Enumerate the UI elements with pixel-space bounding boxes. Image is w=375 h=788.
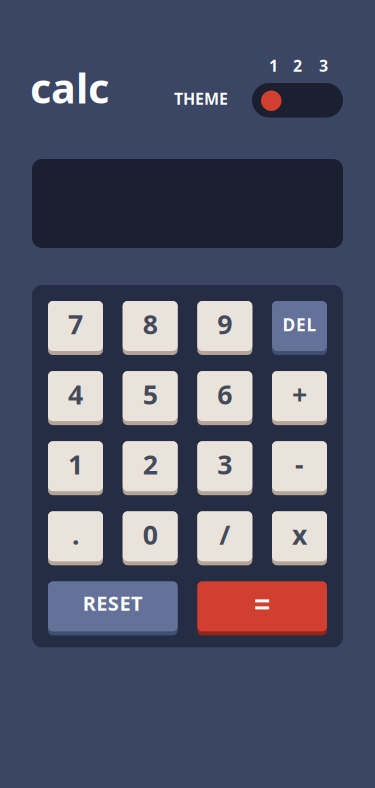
staticText: 5 xyxy=(143,376,158,412)
button[interactable]: 1 xyxy=(48,441,103,491)
staticText: 7 xyxy=(68,306,83,342)
button[interactable]: - xyxy=(272,441,327,491)
staticText: x xyxy=(292,517,307,552)
staticText: DEL xyxy=(282,313,317,336)
staticText: / xyxy=(219,517,230,552)
button[interactable]: + xyxy=(272,371,327,421)
staticText: THEME xyxy=(174,88,228,109)
staticText: + xyxy=(292,376,307,412)
staticText: 6 xyxy=(217,376,232,412)
button[interactable]: RESET xyxy=(48,581,178,631)
button[interactable]: Equals xyxy=(197,581,327,631)
staticText: 3 xyxy=(217,446,232,482)
staticText: . xyxy=(72,517,79,552)
button[interactable]: 4 xyxy=(48,371,103,421)
button[interactable]: 7 xyxy=(48,301,103,351)
button[interactable]: Theme xyxy=(252,83,343,117)
staticText: 1 xyxy=(269,55,278,76)
staticText: RESET xyxy=(83,590,143,616)
staticText: 2 xyxy=(143,446,158,482)
staticText: 2 xyxy=(293,55,302,76)
staticText: 9 xyxy=(217,306,232,342)
staticText: 0 xyxy=(143,517,158,552)
staticText: 3 xyxy=(319,55,328,76)
button[interactable]: 2 xyxy=(123,441,178,491)
button[interactable]: x xyxy=(272,511,327,561)
button[interactable]: 3 xyxy=(197,441,252,491)
staticText: 8 xyxy=(143,306,158,342)
button[interactable]: DEL xyxy=(272,301,327,351)
staticText: - xyxy=(295,446,304,482)
button[interactable]: 6 xyxy=(197,371,252,421)
button[interactable]: / xyxy=(197,511,252,561)
button[interactable]: 9 xyxy=(197,301,252,351)
staticText: 1 xyxy=(68,446,83,482)
button[interactable]: 0 xyxy=(123,511,178,561)
button[interactable]: . xyxy=(48,511,103,561)
staticText: calc xyxy=(30,60,109,115)
staticText: 4 xyxy=(68,376,83,412)
button[interactable]: 5 xyxy=(123,371,178,421)
button[interactable]: 8 xyxy=(123,301,178,351)
